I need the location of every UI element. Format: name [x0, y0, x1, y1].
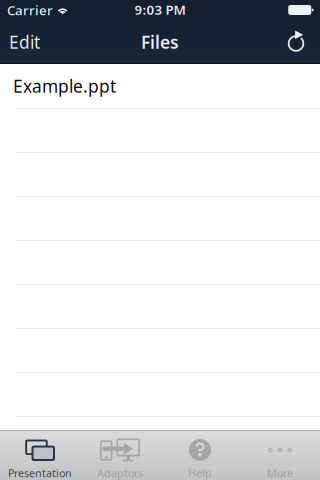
staticText: Carrier: [7, 1, 53, 19]
staticText: Example.ppt: [13, 74, 116, 97]
staticText: Help: [188, 466, 212, 480]
staticText: 9:03 PM: [134, 1, 185, 18]
staticText: Files: [141, 30, 179, 53]
button[interactable]: Example.ppt: [0, 64, 320, 109]
button[interactable]: Refresh: [275, 20, 320, 64]
button[interactable]: Adaptors: [80, 431, 160, 480]
staticText: Edit: [9, 30, 40, 53]
button[interactable]: Help: [160, 431, 240, 480]
button[interactable]: Edit: [0, 20, 51, 64]
staticText: More: [267, 466, 293, 480]
button[interactable]: Presentation: [0, 431, 80, 480]
button[interactable]: More: [240, 431, 320, 480]
staticText: Adaptors: [97, 466, 143, 480]
staticText: Presentation: [8, 466, 72, 480]
